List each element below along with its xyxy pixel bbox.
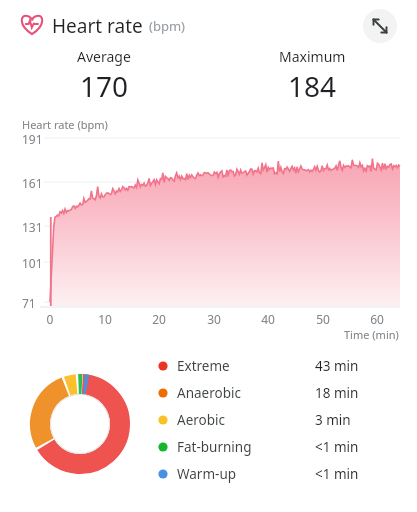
staticText: 71 <box>22 295 36 311</box>
button[interactable]: Maximum <box>208 47 417 105</box>
staticText: 170 <box>80 67 129 105</box>
staticText: 10 <box>90 311 120 327</box>
staticText: Anaerobic <box>177 384 241 402</box>
staticText: Time (min) <box>344 327 399 342</box>
staticText: 20 <box>144 311 174 327</box>
staticText: 131 <box>22 219 43 235</box>
button[interactable]: Expand chart <box>362 8 398 44</box>
staticText: 43 min <box>315 357 359 375</box>
button[interactable]: Fat-burning <box>155 435 405 459</box>
staticText: 101 <box>22 255 43 271</box>
button[interactable]: Aerobic <box>155 408 405 432</box>
staticText: 3 min <box>315 411 351 429</box>
staticText: Aerobic <box>177 411 225 429</box>
staticText: Heart rate (bpm) <box>22 117 108 132</box>
staticText: <1 min <box>315 465 359 483</box>
staticText: 40 <box>253 311 283 327</box>
staticText: Fat-burning <box>177 438 252 456</box>
staticText: Extreme <box>177 357 230 375</box>
staticText: 18 min <box>315 384 359 402</box>
staticText: 161 <box>22 175 43 191</box>
staticText: 50 <box>308 311 338 327</box>
staticText: <1 min <box>315 438 359 456</box>
staticText: Maximum <box>279 47 346 66</box>
button[interactable]: Extreme <box>155 354 405 378</box>
staticText: (bpm) <box>149 17 185 35</box>
button[interactable]: Warm-up <box>155 462 405 486</box>
staticText: Heart rate <box>52 13 143 39</box>
button[interactable]: Anaerobic <box>155 381 405 405</box>
staticText: 184 <box>288 67 337 105</box>
staticText: Warm-up <box>177 465 237 483</box>
staticText: 191 <box>22 131 43 147</box>
staticText: Average <box>77 47 131 66</box>
staticText: 30 <box>199 311 229 327</box>
staticText: 0 <box>35 311 65 327</box>
button[interactable]: Heart rate <box>14 8 185 44</box>
button[interactable]: Average <box>0 47 208 105</box>
staticText: 60 <box>362 311 392 327</box>
